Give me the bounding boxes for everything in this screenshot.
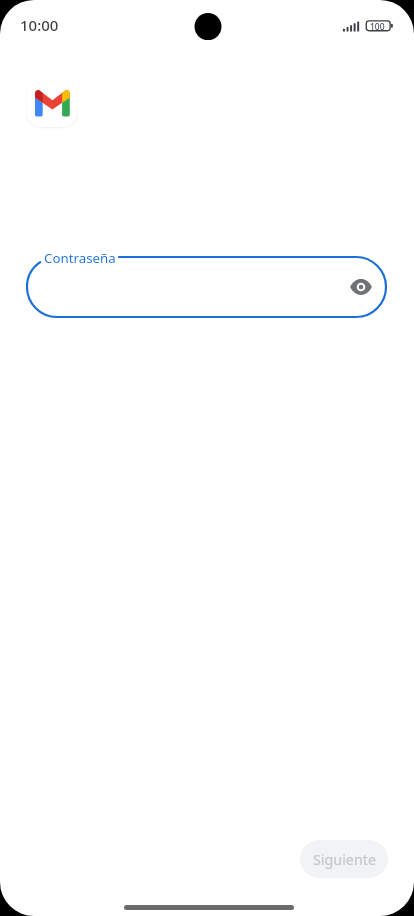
staticText: 10:00	[20, 15, 59, 35]
button[interactable]: Mostrar contraseña	[331, 257, 391, 317]
staticText: Contraseña	[44, 249, 116, 267]
staticText: Siguiente	[313, 850, 376, 869]
button[interactable]: Siguiente	[300, 840, 388, 878]
button[interactable]: Contraseña	[27, 249, 386, 317]
staticText: 100	[370, 21, 385, 33]
